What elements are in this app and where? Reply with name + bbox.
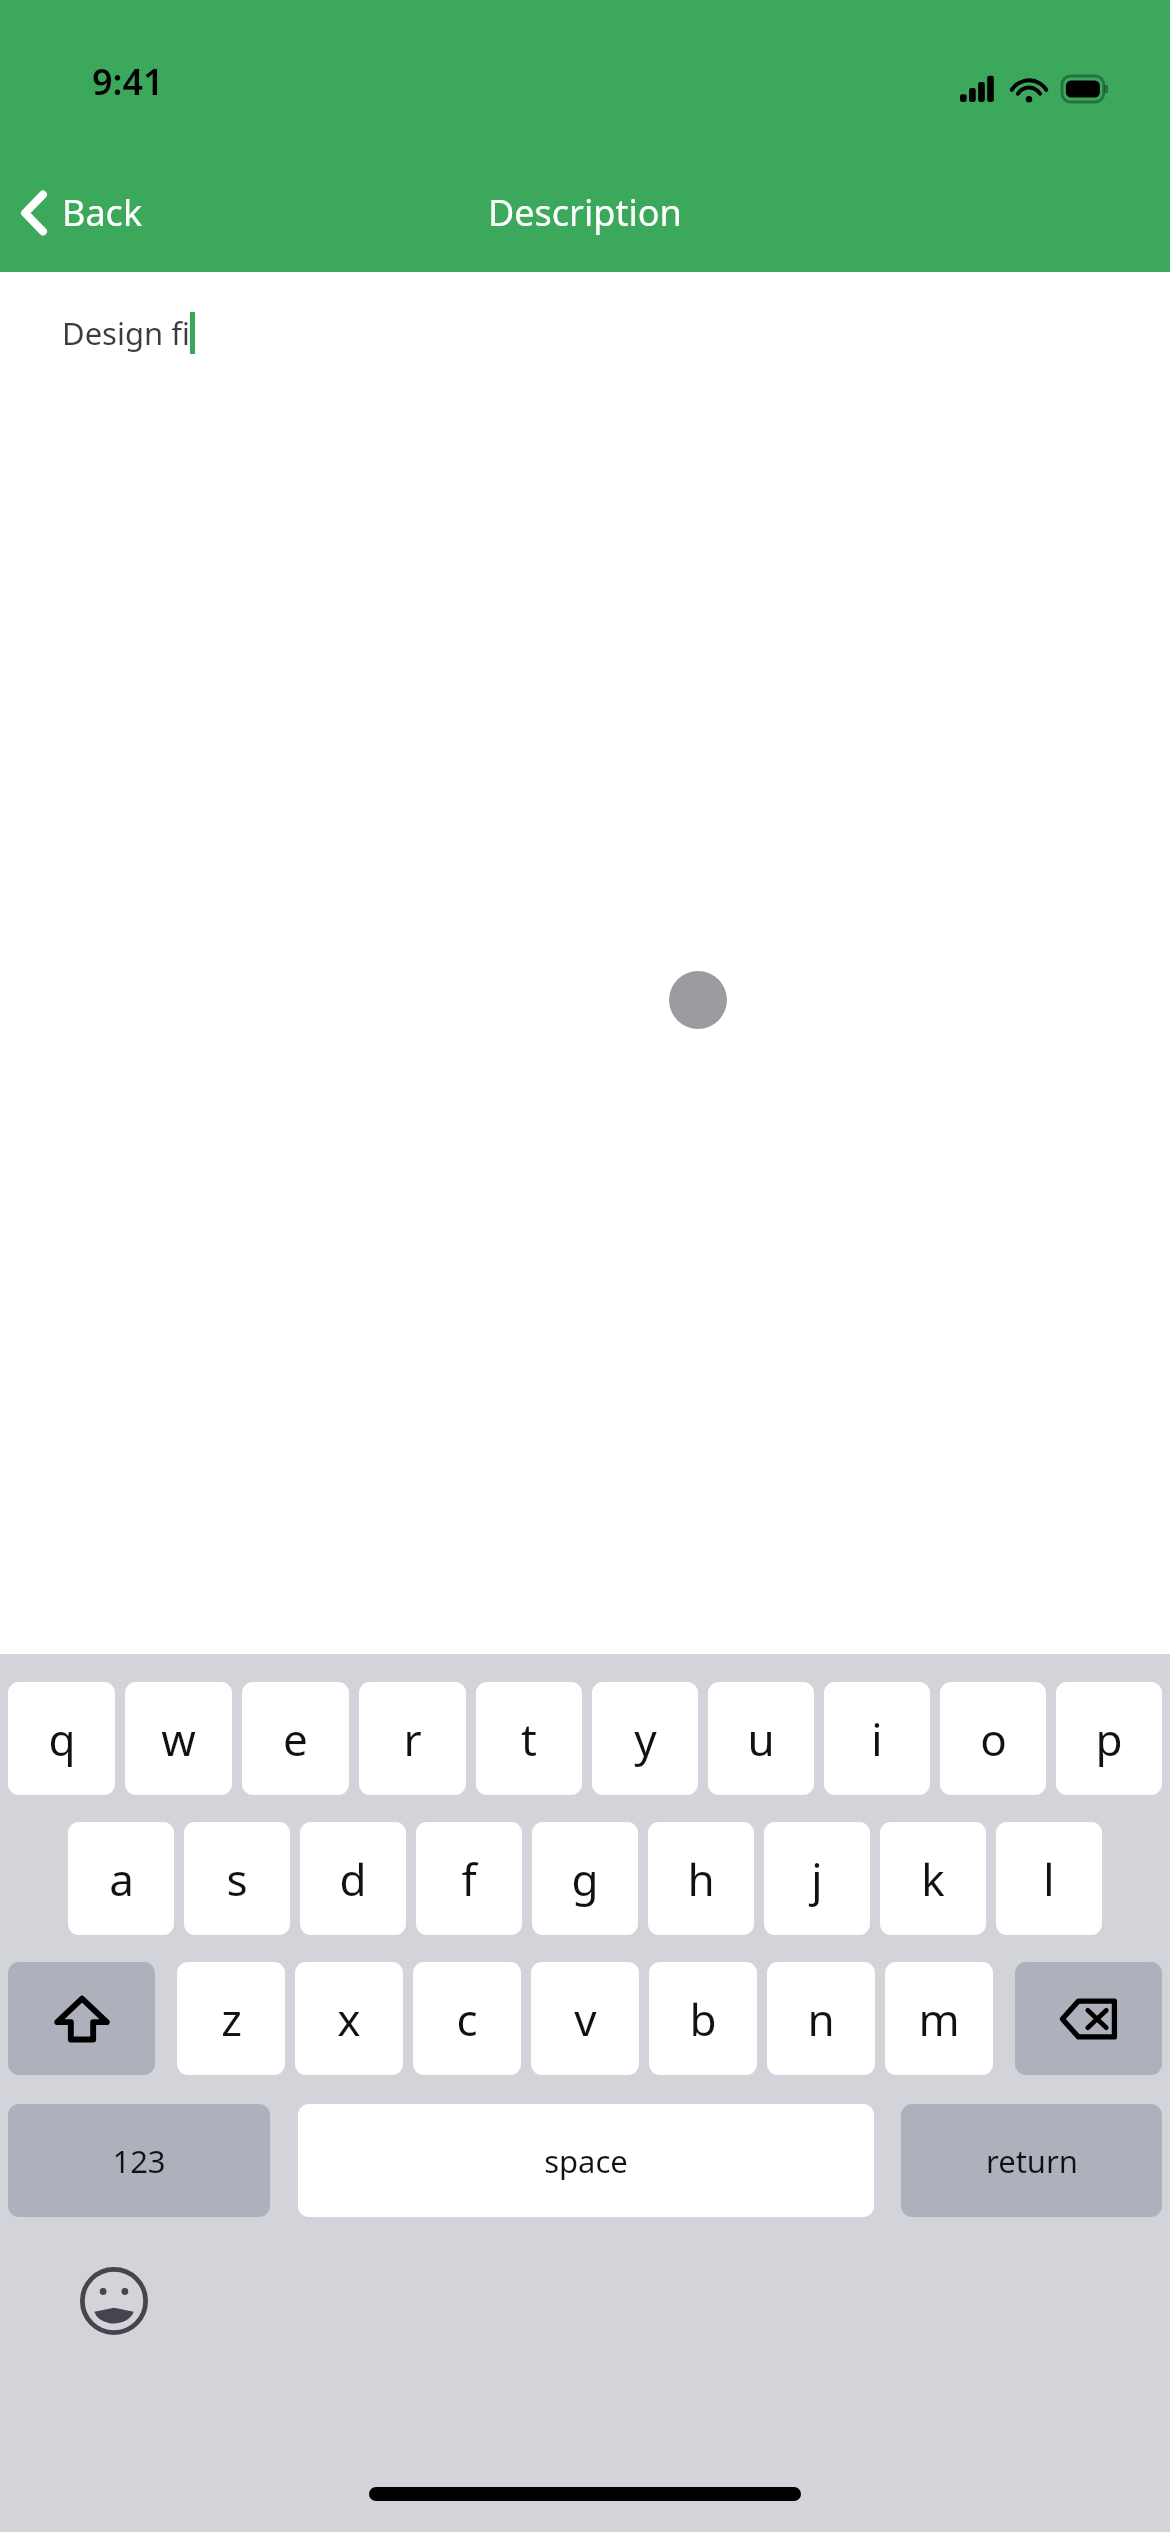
staticText: 123 bbox=[112, 2140, 166, 2182]
button[interactable]: z bbox=[177, 1962, 285, 2075]
button[interactable]: return bbox=[901, 2104, 1162, 2217]
button[interactable]: space bbox=[298, 2104, 874, 2217]
button[interactable]: c bbox=[413, 1962, 521, 2075]
staticText: return bbox=[986, 2140, 1078, 2182]
button[interactable]: g bbox=[532, 1822, 638, 1935]
staticText: n bbox=[807, 1989, 835, 2049]
button[interactable]: i bbox=[824, 1682, 930, 1795]
staticText: l bbox=[1043, 1849, 1055, 1909]
button[interactable]: h bbox=[648, 1822, 754, 1935]
button[interactable]: u bbox=[708, 1682, 814, 1795]
staticText: x bbox=[337, 1989, 361, 2049]
button[interactable]: w bbox=[125, 1682, 232, 1795]
staticText: p bbox=[1095, 1709, 1123, 1769]
staticText: v bbox=[574, 1989, 597, 2049]
button[interactable]: r bbox=[359, 1682, 466, 1795]
button[interactable]: v bbox=[531, 1962, 639, 2075]
staticText: r bbox=[403, 1709, 422, 1769]
staticText: m bbox=[918, 1989, 960, 2049]
button[interactable]: b bbox=[649, 1962, 757, 2075]
button[interactable]: 123 bbox=[8, 2104, 270, 2217]
button[interactable]: j bbox=[764, 1822, 870, 1935]
staticText: e bbox=[283, 1709, 308, 1769]
staticText: h bbox=[687, 1849, 715, 1909]
button[interactable]: Back bbox=[0, 178, 167, 247]
staticText: g bbox=[571, 1849, 599, 1909]
button[interactable]: m bbox=[885, 1962, 993, 2075]
button[interactable]: d bbox=[300, 1822, 406, 1935]
staticText: j bbox=[811, 1849, 823, 1909]
button[interactable]: Shift bbox=[8, 1962, 155, 2075]
staticText: b bbox=[689, 1989, 717, 2049]
button[interactable]: p bbox=[1056, 1682, 1162, 1795]
staticText: Description bbox=[488, 188, 682, 237]
staticText: Back bbox=[62, 188, 143, 237]
staticText: t bbox=[521, 1709, 537, 1769]
staticText: a bbox=[109, 1849, 134, 1909]
button[interactable]: n bbox=[767, 1962, 875, 2075]
staticText: Design fi bbox=[62, 312, 190, 354]
staticText: f bbox=[461, 1849, 477, 1909]
staticText: c bbox=[456, 1989, 478, 2049]
button[interactable]: a bbox=[68, 1822, 174, 1935]
button[interactable]: o bbox=[940, 1682, 1046, 1795]
button[interactable]: x bbox=[295, 1962, 403, 2075]
button[interactable]: q bbox=[8, 1682, 115, 1795]
staticText: space bbox=[544, 2140, 628, 2182]
button[interactable]: e bbox=[242, 1682, 349, 1795]
button[interactable]: t bbox=[476, 1682, 582, 1795]
staticText: k bbox=[921, 1849, 945, 1909]
staticText: u bbox=[747, 1709, 775, 1769]
staticText: w bbox=[161, 1709, 196, 1769]
button[interactable]: Backspace bbox=[1015, 1962, 1162, 2075]
staticText: 9:41 bbox=[92, 57, 164, 106]
button[interactable]: y bbox=[592, 1682, 698, 1795]
staticText: q bbox=[48, 1709, 76, 1769]
button[interactable]: f bbox=[416, 1822, 522, 1935]
staticText: o bbox=[980, 1709, 1007, 1769]
staticText: s bbox=[226, 1849, 248, 1909]
staticText: y bbox=[634, 1709, 657, 1769]
button[interactable]: k bbox=[880, 1822, 986, 1935]
button[interactable]: s bbox=[184, 1822, 290, 1935]
button[interactable]: l bbox=[996, 1822, 1102, 1935]
staticText: z bbox=[221, 1989, 242, 2049]
staticText: d bbox=[339, 1849, 367, 1909]
button[interactable]: Emoji keyboard bbox=[80, 2267, 148, 2335]
staticText: i bbox=[871, 1709, 883, 1769]
